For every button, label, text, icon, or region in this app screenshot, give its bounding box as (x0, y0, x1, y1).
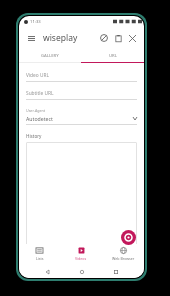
button[interactable]: Videos (60, 244, 102, 264)
button[interactable]: Home (76, 266, 87, 277)
button[interactable]: Recents (110, 266, 121, 277)
staticText: GALLERY (41, 53, 59, 59)
button[interactable]: Close (125, 31, 139, 45)
staticText: History (26, 133, 42, 139)
button[interactable]: Paste (111, 31, 125, 45)
staticText: URL (109, 53, 117, 59)
button[interactable]: URL (81, 49, 144, 62)
staticText: Web Browser (112, 256, 135, 261)
button[interactable]: Subtitle URL (26, 90, 137, 100)
button[interactable]: Video URL (26, 72, 137, 82)
button[interactable]: Block ads (97, 31, 111, 45)
button[interactable]: Web Browser (102, 244, 144, 264)
button[interactable]: Play (121, 230, 136, 245)
staticText: Lists (36, 256, 44, 261)
staticText: User-Agent (26, 108, 46, 113)
staticText: Subtitle URL (26, 90, 54, 97)
button[interactable]: Back (42, 266, 53, 277)
staticText: Autodetect (26, 115, 53, 122)
staticText: Videos (75, 256, 87, 261)
staticText: wiseplay (43, 32, 78, 44)
button[interactable]: Autodetect (26, 115, 137, 122)
button[interactable]: Menu (24, 31, 38, 45)
staticText: 11:33 (30, 19, 41, 25)
staticText: Video URL (26, 72, 49, 79)
button[interactable]: Lists (19, 244, 60, 264)
button[interactable]: GALLERY (19, 49, 81, 62)
